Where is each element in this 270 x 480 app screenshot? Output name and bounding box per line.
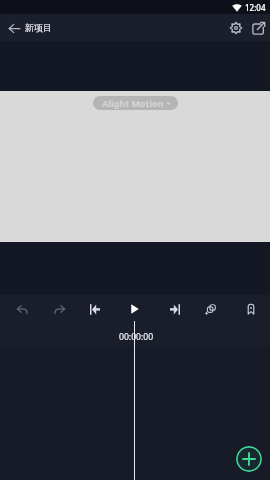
button[interactable]: Keyframe xyxy=(237,295,265,323)
staticText: Alight Motion xyxy=(102,97,164,109)
staticText: 00:00:00 xyxy=(119,331,154,343)
button[interactable]: Alight Motion xyxy=(93,96,178,110)
button[interactable]: Play xyxy=(121,295,149,323)
button[interactable]: Redo xyxy=(46,295,74,323)
button[interactable]: Duplicate xyxy=(197,295,225,323)
button[interactable]: Add layer xyxy=(236,446,262,472)
button[interactable]: Settings xyxy=(223,15,249,41)
button[interactable]: Back xyxy=(1,15,27,41)
button[interactable]: Skip to end xyxy=(161,295,189,323)
button[interactable]: Undo xyxy=(8,295,36,323)
staticText: 12:04 xyxy=(245,2,266,13)
button[interactable]: Export xyxy=(246,15,270,41)
button[interactable]: Skip to start xyxy=(81,295,109,323)
staticText: 新项目 xyxy=(25,22,52,33)
